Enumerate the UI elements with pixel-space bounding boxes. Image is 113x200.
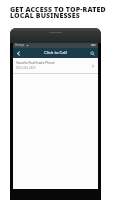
button[interactable]: Search xyxy=(87,48,98,58)
staticText: Vassello Real Estate Phone xyxy=(16,61,55,65)
button[interactable]: Back xyxy=(13,48,24,58)
staticText: Vonage xyxy=(15,43,25,47)
button[interactable]: Vassello Real Estate Phone xyxy=(13,58,98,73)
staticText: LOCAL BUSINESSES xyxy=(10,11,80,21)
staticText: GET ACCESS TO TOP-RATED xyxy=(10,5,106,15)
staticText: Click to Call xyxy=(44,50,67,56)
staticText: (203) 245-2420 xyxy=(16,66,36,70)
